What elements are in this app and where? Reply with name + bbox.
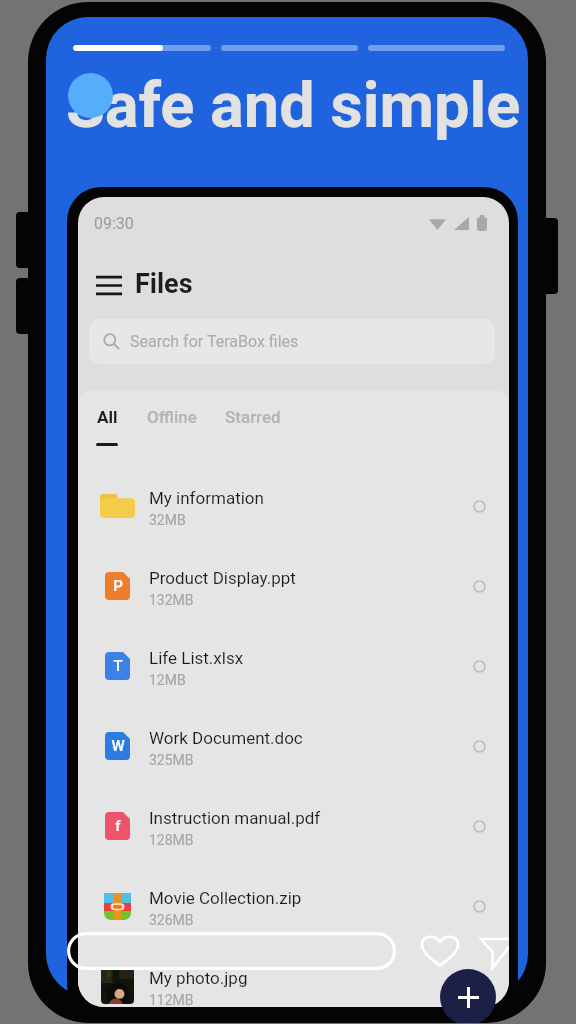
staticText: 132MB <box>149 592 194 608</box>
staticText: T <box>113 657 123 675</box>
button[interactable]: Add <box>440 969 496 1024</box>
button[interactable]: Like <box>416 929 462 975</box>
staticText: Life List.xlsx <box>149 648 244 668</box>
staticText: Movie Collection.zip <box>149 888 302 908</box>
staticText: 112MB <box>149 992 194 1007</box>
staticText: P <box>113 577 123 595</box>
button[interactable]: All <box>96 407 118 446</box>
button[interactable]: W <box>78 706 509 786</box>
staticText: W <box>111 737 125 755</box>
staticText: 32MB <box>149 512 186 528</box>
button[interactable]: T <box>78 626 509 706</box>
staticText: 128MB <box>149 832 194 848</box>
staticText: My information <box>149 488 264 508</box>
staticText: 09:30 <box>94 214 134 233</box>
button[interactable]: f <box>78 786 509 866</box>
staticText: My photo.jpg <box>149 968 248 988</box>
button[interactable]: Share <box>475 930 509 976</box>
staticText: Search for TeraBox files <box>130 332 299 351</box>
staticText: 12MB <box>149 672 186 688</box>
button[interactable]: P <box>78 546 509 626</box>
staticText: Product Display.ppt <box>149 568 296 588</box>
button[interactable]: Starred <box>225 407 281 427</box>
button[interactable]: My information <box>78 466 509 546</box>
staticText: Files <box>135 268 193 300</box>
button[interactable]: Movie Collection.zip <box>78 866 509 946</box>
button[interactable]: Search for TeraBox files <box>89 319 495 364</box>
staticText: All <box>97 407 118 427</box>
button[interactable]: Offline <box>147 407 197 427</box>
button[interactable]: Add comment <box>67 932 396 970</box>
button[interactable]: Menu <box>91 267 127 303</box>
staticText: 326MB <box>149 912 194 928</box>
button[interactable]: My photo.jpg <box>78 946 509 1007</box>
staticText: Safe and simple <box>66 69 521 143</box>
staticText: Work Document.doc <box>149 728 303 748</box>
staticText: Instruction manual.pdf <box>149 808 321 828</box>
staticText: f <box>115 817 121 835</box>
staticText: 325MB <box>149 752 194 768</box>
